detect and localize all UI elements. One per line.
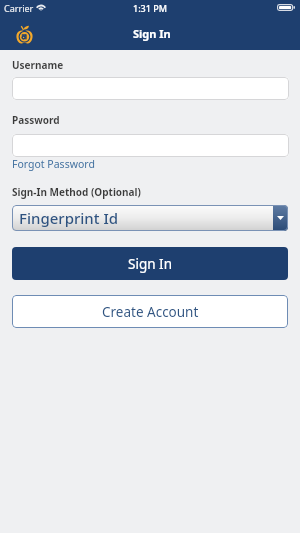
staticText: Sign In xyxy=(128,255,172,273)
staticText: Forgot Password xyxy=(12,157,95,171)
button[interactable]: Create Account xyxy=(12,295,288,328)
button[interactable]: Home xyxy=(8,20,41,46)
staticText: Sign-In Method (Optional) xyxy=(12,185,141,199)
staticText: 1:31 PM xyxy=(133,2,167,14)
button[interactable]: Fingerprint Id xyxy=(12,205,288,231)
button[interactable]: Text input xyxy=(12,134,289,157)
staticText: Carrier xyxy=(4,2,34,14)
button[interactable]: Text input xyxy=(12,77,289,100)
staticText: Create Account xyxy=(102,303,199,321)
staticText: Username xyxy=(12,58,64,72)
staticText: Sign In xyxy=(133,26,171,41)
button[interactable]: Open sign-in method list xyxy=(273,205,288,231)
button[interactable]: Forgot Password xyxy=(12,157,95,171)
button[interactable]: Sign In xyxy=(12,247,288,280)
staticText: Password xyxy=(12,113,60,127)
staticText: Fingerprint Id xyxy=(19,208,118,228)
